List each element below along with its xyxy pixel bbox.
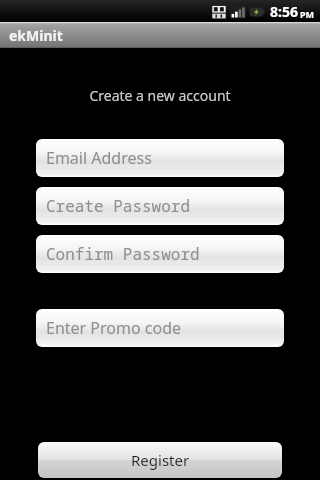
staticText: 8:56 — [270, 2, 298, 21]
staticText: ekMinit — [9, 26, 63, 45]
button[interactable]: Register — [38, 442, 282, 478]
button[interactable]: Confirm Password — [36, 235, 284, 273]
button[interactable]: Enter Promo code — [36, 309, 284, 347]
staticText: Create Password — [46, 195, 191, 217]
staticText: Register — [131, 450, 190, 470]
staticText: Create a new account — [0, 86, 320, 105]
staticText: Enter Promo code — [46, 317, 182, 339]
other: Battery charging — [249, 4, 265, 20]
button[interactable]: Email Address — [36, 139, 284, 177]
staticText: Confirm Password — [46, 243, 200, 265]
other: Signal strength — [230, 4, 246, 20]
staticText: Email Address — [46, 147, 152, 169]
button[interactable]: Create Password — [36, 187, 284, 225]
staticText: PM — [300, 8, 315, 20]
other: 3G network — [211, 4, 227, 20]
